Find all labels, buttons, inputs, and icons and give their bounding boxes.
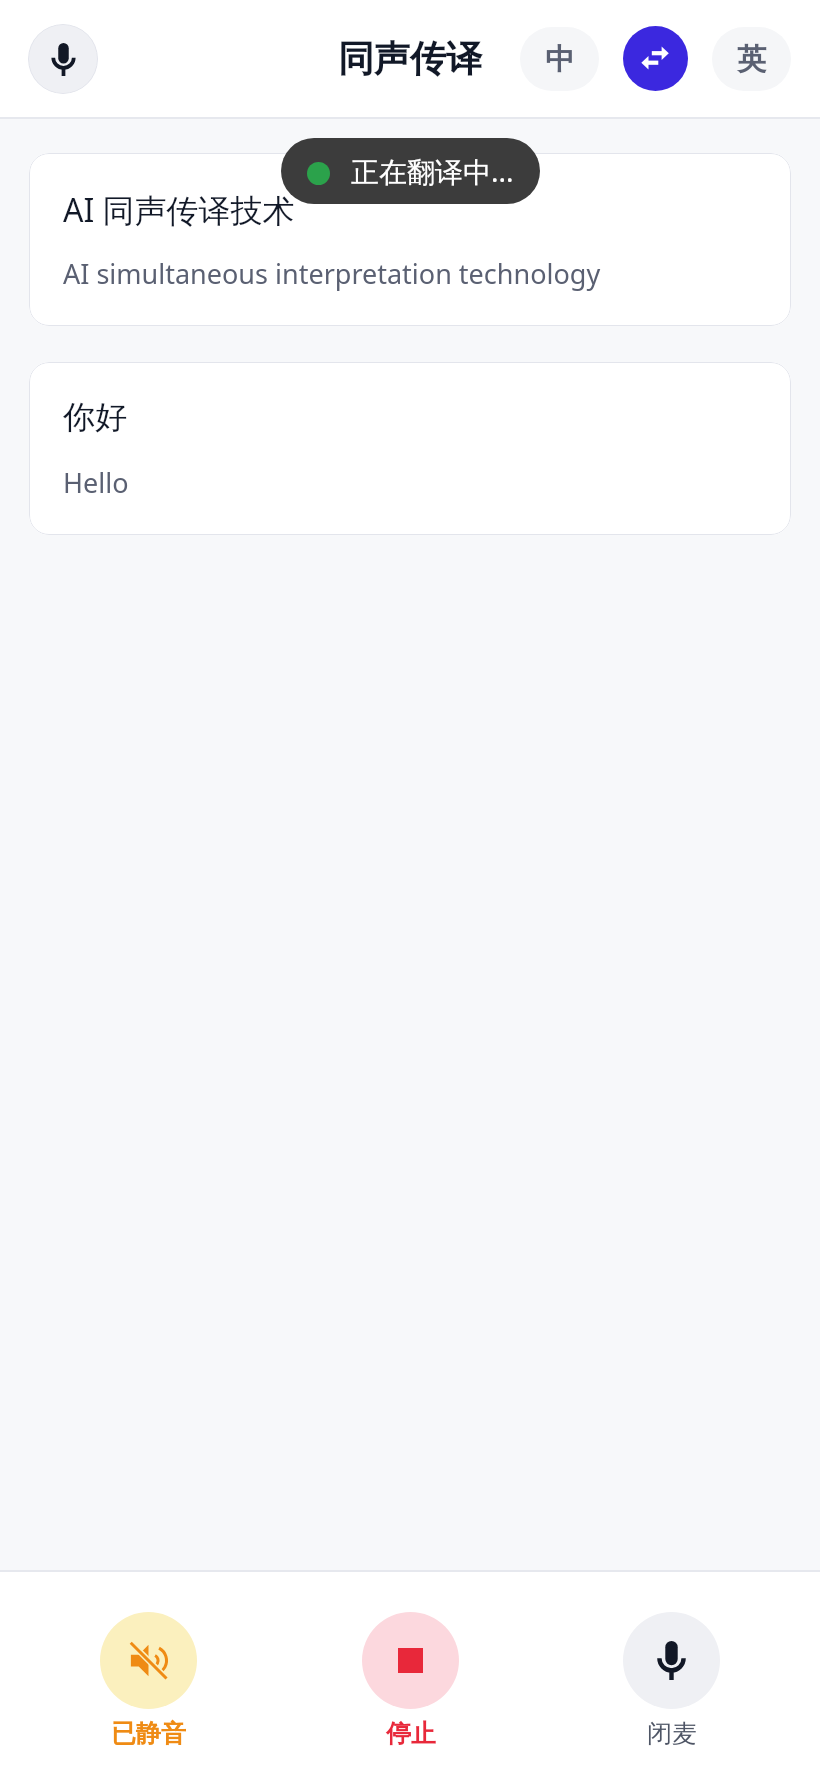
button[interactable]: 英	[712, 27, 791, 91]
staticText: 英	[737, 41, 766, 78]
button[interactable]: 已静音	[100, 1572, 197, 1749]
staticText: AI 同声传译技术	[63, 188, 295, 230]
staticText: 同声传译	[338, 36, 482, 81]
staticText: 正在翻译中...	[351, 152, 514, 190]
button[interactable]: 你好	[29, 362, 791, 535]
staticText: 停止	[386, 1718, 436, 1749]
staticText: 你好	[63, 397, 127, 437]
button[interactable]: Swap languages	[623, 26, 688, 91]
staticText: Hello	[63, 464, 129, 501]
staticText: 已静音	[111, 1718, 186, 1749]
staticText: AI simultaneous interpretation technolog…	[63, 255, 601, 292]
button[interactable]: 正在翻译中...	[281, 138, 540, 204]
button[interactable]: AI 同声传译技术	[29, 153, 791, 326]
button[interactable]: 闭麦	[623, 1572, 720, 1749]
staticText: 闭麦	[647, 1718, 697, 1749]
button[interactable]: Microphone	[28, 24, 98, 94]
staticText: 中	[545, 41, 574, 78]
button[interactable]: 中	[520, 27, 599, 91]
button[interactable]: 停止	[362, 1572, 459, 1749]
